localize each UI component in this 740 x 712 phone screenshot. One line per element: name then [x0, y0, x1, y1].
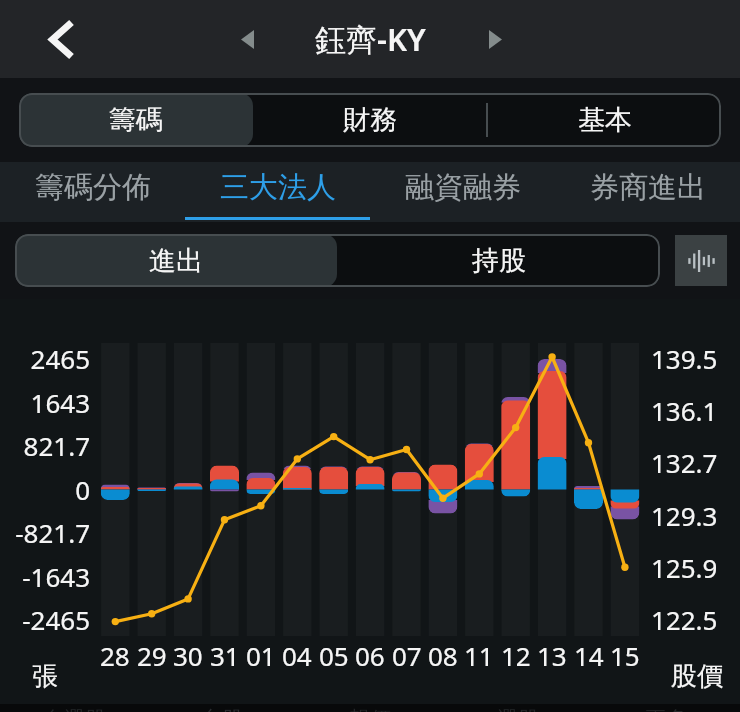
button[interactable]: 三大法人	[185, 162, 370, 222]
staticText: 07	[392, 638, 422, 673]
staticText: 13	[537, 638, 567, 673]
button[interactable]: Chart settings	[675, 235, 727, 286]
button[interactable]: Previous stock	[226, 18, 268, 60]
staticText: 財務	[343, 103, 397, 137]
button[interactable]: 台股	[148, 704, 296, 712]
staticText: 報價	[349, 706, 391, 712]
staticText: 更多	[645, 706, 687, 712]
staticText: 台股	[201, 706, 243, 712]
staticText: 選股	[497, 706, 539, 712]
staticText: -1643	[22, 559, 90, 594]
staticText: 張	[32, 660, 58, 693]
staticText: 籌碼	[109, 103, 163, 137]
staticText: 12	[501, 638, 531, 673]
button[interactable]: 選股	[444, 704, 592, 712]
staticText: 0	[75, 472, 90, 507]
button[interactable]: 更多	[592, 704, 740, 712]
staticText: 15	[610, 638, 640, 673]
staticText: 132.7	[651, 445, 718, 480]
staticText: 01	[246, 638, 276, 673]
button[interactable]: 進出	[15, 234, 337, 287]
button[interactable]: Next stock	[474, 18, 516, 60]
staticText: 鈺齊-KY	[315, 18, 426, 60]
button[interactable]: 財務	[253, 93, 486, 147]
button[interactable]: 融資融券	[370, 162, 555, 222]
staticText: -821.7	[15, 515, 90, 550]
staticText: 持股	[472, 244, 526, 278]
staticText: 14	[574, 638, 604, 673]
button[interactable]: 基本	[488, 93, 721, 147]
staticText: 股價	[671, 660, 723, 693]
staticText: 28	[100, 638, 130, 673]
staticText: 三大法人	[220, 169, 336, 206]
staticText: 31	[210, 638, 240, 673]
staticText: 11	[464, 638, 494, 673]
staticText: 券商進出	[590, 169, 706, 206]
staticText: 129.3	[651, 498, 718, 533]
staticText: 融資融券	[405, 169, 521, 206]
staticText: 08	[428, 638, 458, 673]
staticText: 自選股	[43, 706, 106, 712]
staticText: 30	[173, 638, 203, 673]
staticText: -2465	[22, 602, 90, 637]
staticText: 29	[137, 638, 167, 673]
staticText: 139.5	[651, 341, 718, 376]
staticText: 122.5	[651, 602, 718, 637]
staticText: 05	[319, 638, 349, 673]
staticText: 2465	[30, 341, 90, 376]
button[interactable]: 持股	[337, 234, 660, 287]
staticText: 1643	[30, 385, 90, 420]
button[interactable]: 自選股	[0, 704, 148, 712]
button[interactable]: 籌碼	[19, 93, 253, 147]
staticText: 821.7	[23, 428, 90, 463]
button[interactable]: 籌碼分佈	[0, 162, 185, 222]
staticText: 136.1	[651, 393, 718, 428]
staticText: 06	[355, 638, 385, 673]
staticText: 125.9	[651, 550, 718, 585]
button[interactable]: 券商進出	[555, 162, 740, 222]
staticText: 進出	[149, 244, 203, 278]
button[interactable]: Back	[40, 11, 84, 67]
staticText: 基本	[578, 103, 632, 137]
staticText: 04	[282, 638, 312, 673]
staticText: 籌碼分佈	[35, 169, 151, 206]
button[interactable]: 報價	[296, 704, 444, 712]
